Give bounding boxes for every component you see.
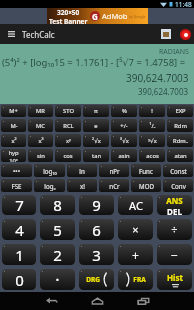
button[interactable]: ÷ bbox=[157, 219, 192, 240]
button[interactable]: Recents bbox=[120, 292, 166, 310]
staticText: Const bbox=[170, 167, 187, 175]
button[interactable]: cos bbox=[55, 149, 81, 162]
button[interactable]: Const bbox=[163, 164, 193, 177]
staticText: log₁₀ bbox=[43, 167, 57, 175]
button[interactable]: Record bbox=[176, 24, 194, 44]
staticText: ANS bbox=[166, 195, 183, 206]
button[interactable]: atan bbox=[167, 149, 193, 162]
button[interactable]: nPr bbox=[99, 164, 129, 177]
button[interactable]: ••• bbox=[1, 164, 32, 177]
staticText: tan bbox=[92, 152, 101, 160]
staticText: nPr bbox=[109, 167, 120, 175]
button[interactable]: + bbox=[118, 244, 153, 265]
staticText: 3 bbox=[92, 245, 101, 265]
button[interactable]: 8 bbox=[40, 195, 75, 215]
staticText: AdMob bbox=[102, 11, 128, 21]
staticText: 11:48 bbox=[175, 0, 192, 8]
button[interactable]: M+ bbox=[1, 105, 26, 117]
button[interactable]: Hist bbox=[157, 269, 192, 290]
staticText: MR bbox=[36, 107, 45, 115]
staticText: 320×50 bbox=[57, 8, 80, 17]
button[interactable]: ²√x bbox=[83, 134, 109, 147]
button[interactable]: π bbox=[83, 105, 109, 117]
button[interactable]: acos bbox=[139, 149, 165, 162]
button[interactable]: · bbox=[40, 269, 75, 290]
button[interactable]: Rdmₙ bbox=[167, 134, 193, 147]
button[interactable]: − bbox=[157, 244, 192, 265]
button[interactable]: +/- bbox=[111, 119, 137, 132]
button[interactable]: 9 bbox=[79, 195, 114, 215]
button[interactable]: Menu bbox=[0, 24, 22, 44]
staticText: 390,624.7003 bbox=[138, 86, 189, 97]
button[interactable]: tan bbox=[83, 149, 109, 162]
staticText: + bbox=[132, 247, 139, 263]
staticText: nCr bbox=[109, 182, 120, 190]
staticText: Func bbox=[139, 167, 153, 175]
button[interactable]: ³√x bbox=[111, 134, 137, 147]
button[interactable]: MOD bbox=[131, 179, 161, 192]
button[interactable]: ¹/ₓ bbox=[139, 119, 165, 132]
staticText: ÷ bbox=[171, 222, 178, 237]
button[interactable]: RCL bbox=[55, 119, 81, 132]
staticText: MOD bbox=[139, 182, 154, 190]
staticText: Rdm bbox=[174, 122, 187, 130]
staticText: 390,624.7003 bbox=[126, 71, 189, 85]
staticText: cos bbox=[63, 152, 73, 160]
staticText: π bbox=[94, 107, 98, 115]
button[interactable]: Func bbox=[131, 164, 161, 177]
button[interactable]: EXP bbox=[167, 105, 193, 117]
button[interactable]: nCr bbox=[99, 179, 129, 192]
button[interactable]: % bbox=[111, 105, 137, 117]
staticText: STO bbox=[63, 107, 74, 115]
button[interactable]: 2 bbox=[40, 244, 75, 265]
button[interactable]: Conv bbox=[163, 179, 193, 192]
button[interactable]: FSE bbox=[1, 179, 32, 192]
staticText: ²√x bbox=[92, 137, 101, 145]
button[interactable]: hyp 10ˣ bbox=[1, 149, 26, 162]
button[interactable]: AC bbox=[118, 195, 153, 215]
button[interactable]: × bbox=[118, 219, 153, 240]
button[interactable]: ! bbox=[139, 105, 165, 117]
button[interactable]: MR bbox=[28, 105, 53, 117]
button[interactable]: sin bbox=[28, 149, 53, 162]
staticText: Rdmₙ bbox=[173, 137, 188, 145]
button[interactable]: asin bbox=[111, 149, 137, 162]
button[interactable]: Home bbox=[74, 292, 120, 310]
button[interactable]: M- bbox=[1, 119, 26, 132]
staticText: 0 bbox=[15, 270, 24, 290]
button[interactable]: FRA bbox=[118, 269, 153, 290]
button[interactable]: ANS bbox=[157, 195, 192, 215]
button[interactable]: DRG bbox=[79, 269, 114, 290]
button[interactable]: logₓ bbox=[34, 179, 65, 192]
button[interactable]: Rdm bbox=[167, 119, 193, 132]
button[interactable]: MC bbox=[28, 119, 53, 132]
button[interactable]: Back bbox=[28, 292, 74, 310]
button[interactable]: xʸ bbox=[55, 134, 81, 147]
button[interactable]: ln bbox=[67, 164, 97, 177]
button[interactable]: Screenshot bbox=[155, 24, 176, 44]
staticText: 7 bbox=[15, 195, 24, 215]
button[interactable]: e bbox=[83, 119, 109, 132]
staticText: (5⁴)² + [log₁₀15 = 1.1761] - [⁵√7 = 1.47… bbox=[2, 56, 186, 69]
button[interactable]: 0 bbox=[2, 269, 36, 290]
staticText: DRG bbox=[86, 275, 100, 284]
button[interactable]: 5 bbox=[40, 219, 75, 240]
button[interactable]: 3 bbox=[79, 244, 114, 265]
staticText: by Google bbox=[129, 14, 146, 19]
button[interactable]: 6 bbox=[79, 219, 114, 240]
staticText: Test Banner bbox=[49, 17, 88, 24]
staticText: TechCalc bbox=[22, 29, 55, 40]
staticText: logₓ bbox=[44, 182, 56, 190]
button[interactable]: 7 bbox=[2, 195, 36, 215]
staticText: sin bbox=[37, 152, 45, 160]
button[interactable]: log₁₀ bbox=[34, 164, 65, 177]
button[interactable]: x² bbox=[1, 134, 26, 147]
staticText: FSE bbox=[11, 182, 22, 190]
button[interactable]: 4 bbox=[2, 219, 36, 240]
button[interactable]: 1 bbox=[2, 244, 36, 265]
button[interactable]: x³ bbox=[28, 134, 53, 147]
button[interactable]: STO bbox=[55, 105, 81, 117]
staticText: hyp 10ˣ bbox=[8, 149, 19, 162]
button[interactable]: x! bbox=[67, 179, 97, 192]
button[interactable]: ʸ√x bbox=[139, 134, 165, 147]
